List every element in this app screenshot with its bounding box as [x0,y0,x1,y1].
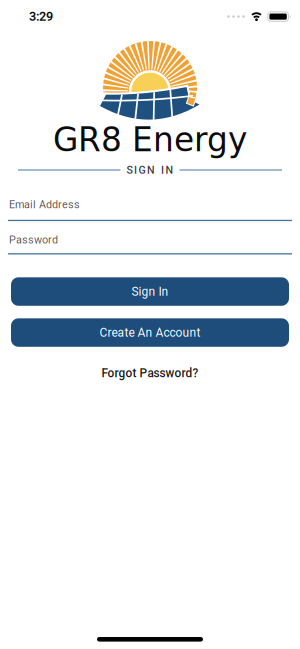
staticText: GR8 Energy [53,121,247,159]
staticText: Sign In [131,284,168,299]
button[interactable]: Password [0,233,300,254]
button[interactable]: Sign In [11,277,289,306]
staticText: SIGN IN [126,164,173,176]
staticText: Password [9,234,58,246]
button[interactable]: Create An Account [11,318,289,347]
staticText: 3:29 [29,9,53,24]
staticText: Email Address [9,198,80,211]
staticText: Forgot Password? [101,366,198,380]
staticText: Create An Account [99,325,200,340]
button[interactable]: Forgot Password? [101,367,198,380]
button[interactable]: Email Address [0,198,300,221]
